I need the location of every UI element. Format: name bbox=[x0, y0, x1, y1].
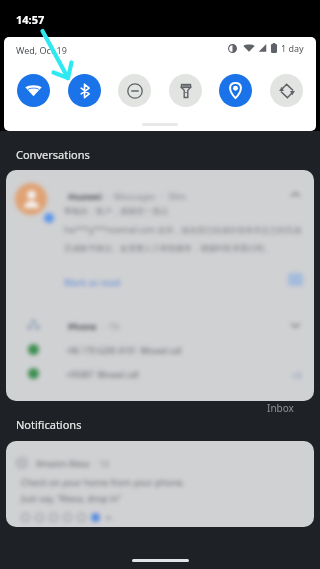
button[interactable]: Mark as read bbox=[64, 276, 120, 288]
staticText: Notifications bbox=[16, 417, 82, 432]
staticText: 1 day bbox=[281, 42, 304, 54]
staticText: Phone bbox=[68, 320, 97, 332]
staticText: 14:57 bbox=[16, 12, 45, 27]
staticText: +95087 Missed call bbox=[66, 369, 139, 380]
staticText: 完成账号验证。如需要人工帮助服务，请随时联系我们吧。 bbox=[64, 243, 272, 253]
staticText: Wed, Oct 19 bbox=[16, 44, 67, 56]
button[interactable]: Auto rotate bbox=[270, 74, 303, 107]
staticText: +3 bbox=[292, 370, 302, 381]
button[interactable]: Do not disturb bbox=[118, 74, 151, 107]
button[interactable]: Bluetooth bbox=[68, 74, 101, 107]
staticText: Conversations bbox=[16, 147, 90, 162]
staticText: Inbox bbox=[267, 401, 294, 415]
staticText: Huawei bbox=[68, 190, 102, 202]
staticText: hw***g***​noemail.com 支持，现在您已经成功登录并且已经完成 bbox=[64, 224, 302, 235]
staticText: · 1h bbox=[97, 320, 120, 332]
staticText: +86 170 6200 4191 Missed call bbox=[66, 345, 182, 356]
button[interactable]: Flashlight bbox=[169, 74, 202, 107]
staticText: · 1d bbox=[89, 458, 109, 469]
button[interactable]: Wi-Fi bbox=[17, 74, 50, 107]
staticText: Amazon Alexa bbox=[36, 458, 89, 469]
staticText: Mark as read bbox=[64, 276, 120, 288]
staticText: 尊敬的：客户，感谢您一直以 bbox=[64, 206, 168, 216]
button[interactable]: Location bbox=[219, 74, 252, 107]
staticText: · Messages · 39m bbox=[102, 190, 187, 202]
staticText: Just say, “Alexa, drop in” bbox=[21, 492, 121, 504]
staticText: Check on your home from your phone. bbox=[21, 476, 185, 488]
